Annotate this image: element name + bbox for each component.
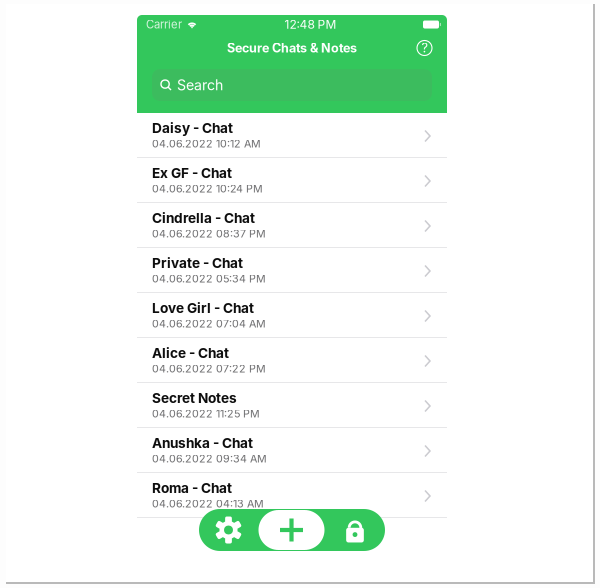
- staticText: Roma - Chat: [152, 480, 232, 496]
- staticText: 04.06.2022 05:34 PM: [152, 272, 266, 285]
- button[interactable]: Daisy - Chat: [137, 113, 447, 158]
- staticText: Alice - Chat: [152, 345, 229, 361]
- staticText: Secret Notes: [152, 390, 237, 406]
- staticText: 12:48 PM: [284, 17, 336, 32]
- button[interactable]: Cindrella - Chat: [137, 203, 447, 248]
- staticText: 04.06.2022 10:12 AM: [152, 137, 261, 150]
- button[interactable]: Roma - Chat: [137, 473, 447, 518]
- staticText: Search: [177, 76, 223, 93]
- staticText: Daisy - Chat: [152, 120, 233, 136]
- button[interactable]: Secret Notes: [137, 383, 447, 428]
- staticText: Anushka - Chat: [152, 435, 253, 451]
- staticText: Secure Chats & Notes: [227, 40, 357, 56]
- button[interactable]: Love Girl - Chat: [137, 293, 447, 338]
- staticText: 04.06.2022 11:25 PM: [152, 407, 260, 420]
- button[interactable]: Private - Chat: [137, 248, 447, 293]
- button[interactable]: New chat: [258, 509, 325, 551]
- staticText: 04.06.2022 07:04 AM: [152, 317, 266, 330]
- staticText: Love Girl - Chat: [152, 300, 254, 316]
- button[interactable]: Settings: [199, 509, 258, 551]
- staticText: 04.06.2022 10:24 PM: [152, 182, 263, 195]
- staticText: Cindrella - Chat: [152, 210, 255, 226]
- staticText: 04.06.2022 09:34 AM: [152, 452, 267, 465]
- staticText: 04.06.2022 07:22 PM: [152, 362, 266, 375]
- button[interactable]: Anushka - Chat: [137, 428, 447, 473]
- staticText: Private - Chat: [152, 255, 243, 271]
- button[interactable]: Ex GF - Chat: [137, 158, 447, 203]
- staticText: 04.06.2022 04:13 AM: [152, 497, 264, 510]
- button[interactable]: Lock: [325, 509, 385, 551]
- staticText: Ex GF - Chat: [152, 165, 232, 181]
- staticText: 04.06.2022 08:37 PM: [152, 227, 266, 240]
- button[interactable]: Alice - Chat: [137, 338, 447, 383]
- staticText: Carrier: [146, 18, 182, 31]
- button[interactable]: Help: [416, 39, 433, 56]
- staticText: ?: [421, 40, 427, 56]
